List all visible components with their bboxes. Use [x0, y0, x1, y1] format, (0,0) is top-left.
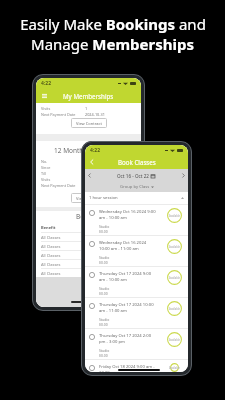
- staticText: All Classes: [41, 244, 61, 249]
- staticText: $0.00: [99, 229, 108, 234]
- staticText: Manage Memberships: [31, 34, 194, 54]
- staticText: View Contract: [76, 196, 102, 201]
- staticText: Available: [169, 214, 180, 218]
- staticText: am - 11:00 am: [99, 308, 127, 314]
- staticText: Studio: [99, 317, 110, 322]
- button[interactable]: Wednesday Oct 16 2024: [85, 236, 188, 267]
- staticText: 2025-10-01: [85, 171, 105, 176]
- staticText: Wednesday Oct 16 2024 9:00: [99, 209, 156, 215]
- staticText: No.: [41, 159, 48, 164]
- staticText: All Classes: [41, 235, 61, 240]
- staticText: am - 10:00 am: [99, 277, 127, 283]
- staticText: Thursday Oct 17 2024 2:00: [99, 333, 152, 339]
- staticText: Book Classes: [118, 158, 156, 166]
- staticText: 1 hour session: [89, 195, 118, 201]
- staticText: Friday Oct 18 2024 9:00 am -: [99, 364, 155, 370]
- staticText: 10:00 am - 11:00 am: [99, 246, 139, 252]
- staticText: Available: [169, 338, 180, 342]
- staticText: 2024-10-01: [85, 165, 105, 170]
- staticText: Studio: [99, 286, 110, 291]
- button[interactable]: Previous week: [88, 169, 185, 182]
- staticText: Group by Class: [120, 184, 150, 190]
- staticText: All Classes: [41, 253, 61, 258]
- staticText: Benefit: [41, 225, 56, 230]
- staticText: Easily Make Bookings and: [20, 14, 206, 34]
- staticText: 4:22: [41, 80, 51, 87]
- staticText: Wednesday Oct 16 2024: [99, 240, 147, 246]
- button[interactable]: Thursday Oct 17 2024 2:00: [85, 329, 188, 360]
- staticText: Visits: [41, 177, 51, 182]
- button[interactable]: Friday Oct 18 2024 9:00 am -: [85, 360, 188, 372]
- staticText: 2024-10-31: [85, 112, 105, 117]
- staticText: am - 10:00 am: [99, 215, 127, 221]
- staticText: All Classes: [41, 262, 61, 267]
- staticText: Visits: [41, 106, 51, 111]
- staticText: Till: [41, 171, 47, 176]
- staticText: Thursday Oct 17 2024 9:00: [99, 271, 152, 277]
- staticText: 4:22: [90, 147, 100, 154]
- staticText: pm - 3:00 pm: [99, 339, 125, 345]
- button[interactable]: Menu: [39, 91, 49, 101]
- button[interactable]: Thursday Oct 17 2024 9:00: [85, 267, 188, 298]
- other: Previous week: [88, 173, 91, 178]
- button[interactable]: Group by Class: [85, 182, 188, 192]
- staticText: Studio: [99, 255, 110, 260]
- staticText: Benefits: [76, 212, 101, 221]
- button[interactable]: 1 hour session: [89, 192, 184, 204]
- staticText: Next Payment Date: [41, 112, 76, 117]
- button[interactable]: View Contract: [71, 118, 107, 128]
- staticText: Thursday Oct 17 2024 10:00: [99, 302, 154, 308]
- staticText: Available: [169, 245, 180, 249]
- staticText: Studio: [99, 224, 110, 229]
- staticText: Available: [169, 366, 180, 370]
- staticText: Available: [169, 307, 180, 311]
- staticText: Since: [41, 165, 51, 170]
- staticText: $0.00: [99, 322, 108, 327]
- staticText: 12 Month Membership: [54, 146, 124, 155]
- staticText: Next Payment Date: [41, 183, 76, 188]
- button[interactable]: View Contract: [71, 193, 107, 203]
- staticText: $0.00: [99, 353, 108, 358]
- staticText: All Classes: [41, 271, 61, 276]
- button[interactable]: Wednesday Oct 16 2024 9:00: [85, 205, 188, 236]
- staticText: Oct 16 - Oct 22: [117, 173, 149, 179]
- staticText: View Contract: [76, 121, 102, 126]
- staticText: $0.00: [99, 291, 108, 296]
- staticText: Studio: [99, 348, 110, 353]
- other: Next week: [182, 173, 185, 178]
- staticText: My Memberships: [63, 92, 114, 100]
- staticText: $0.00: [99, 260, 108, 265]
- staticText: 1: [85, 106, 88, 111]
- button[interactable]: Back: [87, 157, 97, 167]
- button[interactable]: Thursday Oct 17 2024 10:00: [85, 298, 188, 329]
- staticText: 10:00 am: [99, 370, 118, 372]
- staticText: Available: [169, 276, 180, 280]
